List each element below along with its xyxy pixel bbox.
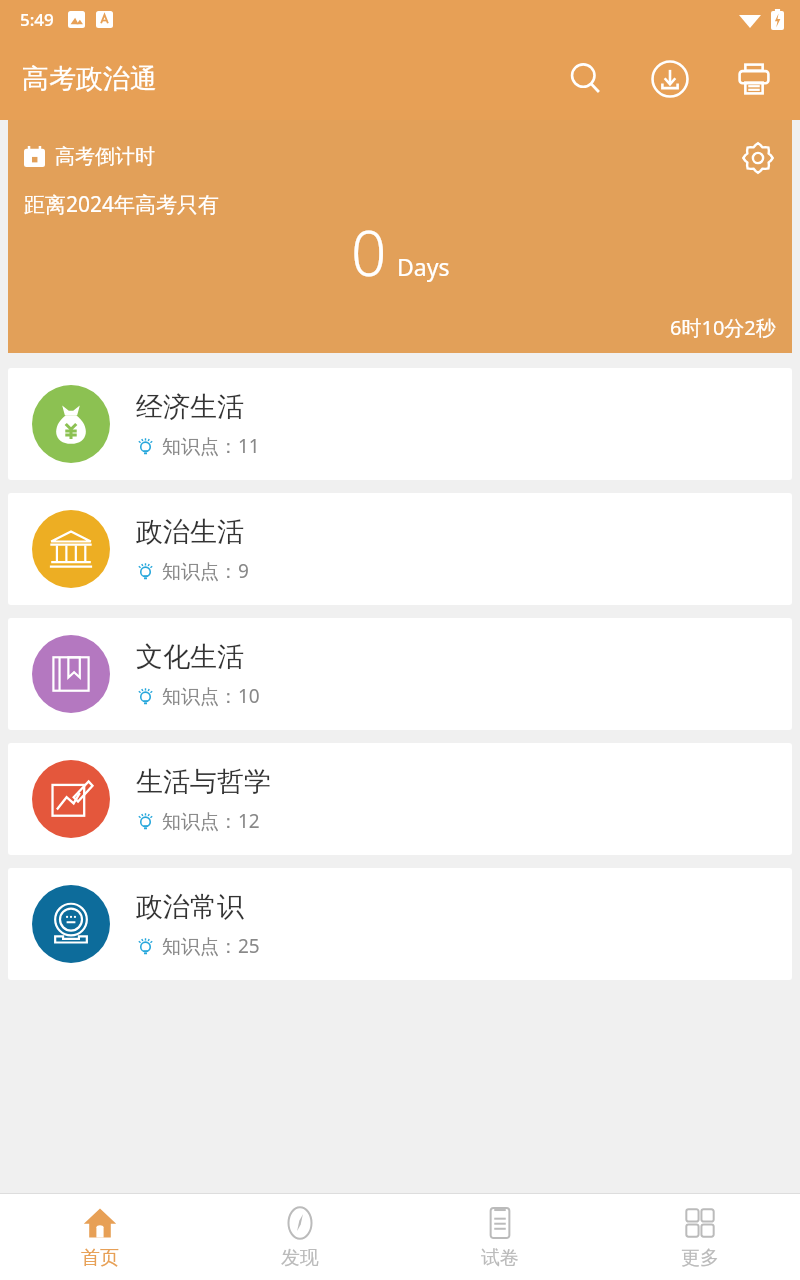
staticText: 政治生活 — [136, 515, 244, 549]
staticText: 政治常识 — [136, 890, 244, 924]
button[interactable]: 更多 — [600, 1194, 800, 1280]
button[interactable]: 文化生活 — [8, 618, 792, 730]
button[interactable]: Print — [726, 51, 782, 107]
button[interactable]: Download — [642, 51, 698, 107]
staticText: 更多 — [681, 1246, 719, 1270]
staticText: 首页 — [81, 1246, 119, 1270]
staticText: 高考倒计时 — [55, 144, 155, 169]
staticText: 经济生活 — [136, 390, 244, 424]
staticText: 距离2024年高考只有 — [24, 190, 220, 219]
staticText: 0 — [351, 210, 387, 294]
staticText: 知识点：11 — [162, 433, 260, 459]
staticText: 6时10分2秒 — [670, 314, 776, 341]
button[interactable]: 首页 — [0, 1194, 200, 1280]
staticText: 试卷 — [481, 1246, 519, 1270]
button[interactable]: 试卷 — [400, 1194, 600, 1280]
staticText: 生活与哲学 — [136, 765, 271, 799]
button[interactable]: 政治生活 — [8, 493, 792, 605]
button[interactable]: 高考倒计时 — [8, 120, 792, 353]
button[interactable]: 生活与哲学 — [8, 743, 792, 855]
staticText: 知识点：10 — [162, 683, 260, 709]
button[interactable]: 发现 — [200, 1194, 400, 1280]
staticText: 知识点：9 — [162, 558, 249, 584]
staticText: Days — [397, 251, 450, 282]
staticText: 文化生活 — [136, 640, 244, 674]
staticText: 5:49 — [20, 8, 54, 31]
button[interactable]: 经济生活 — [8, 368, 792, 480]
staticText: 知识点：25 — [162, 933, 260, 959]
button[interactable]: 政治常识 — [8, 868, 792, 980]
staticText: 知识点：12 — [162, 808, 260, 834]
staticText: 发现 — [281, 1246, 319, 1270]
button[interactable]: Search — [558, 51, 614, 107]
button[interactable]: Settings — [738, 138, 778, 178]
staticText: 高考政治通 — [22, 62, 157, 96]
